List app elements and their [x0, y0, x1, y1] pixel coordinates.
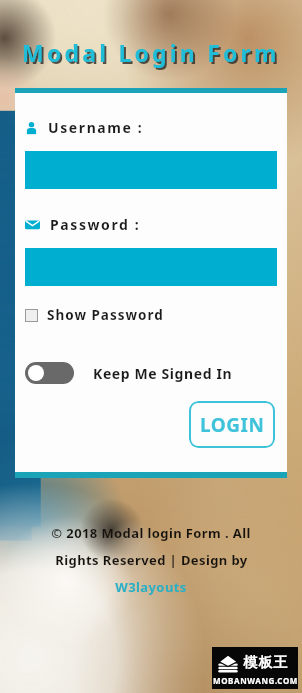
button[interactable]: LOGIN — [189, 401, 275, 448]
staticText: Show Password — [47, 306, 164, 324]
staticText: Password : — [50, 215, 141, 234]
staticText: © 2018 Modal login Form . All — [51, 524, 251, 542]
staticText: Modal Login Form — [22, 37, 280, 68]
button[interactable]: Keep me signed in toggle — [25, 362, 74, 384]
staticText: 模板王 — [243, 654, 288, 672]
staticText: LOGIN — [200, 412, 265, 438]
staticText: Keep Me Signed In — [93, 364, 233, 383]
staticText: Modal Login Form — [24, 39, 282, 70]
staticText: Username : — [48, 118, 144, 137]
staticText: Rights Reserved | Design by — [55, 551, 248, 569]
button[interactable]: W3layouts — [115, 578, 187, 596]
staticText: MOBANWANG.COM — [213, 675, 298, 686]
button[interactable]: Show Password — [25, 306, 164, 324]
